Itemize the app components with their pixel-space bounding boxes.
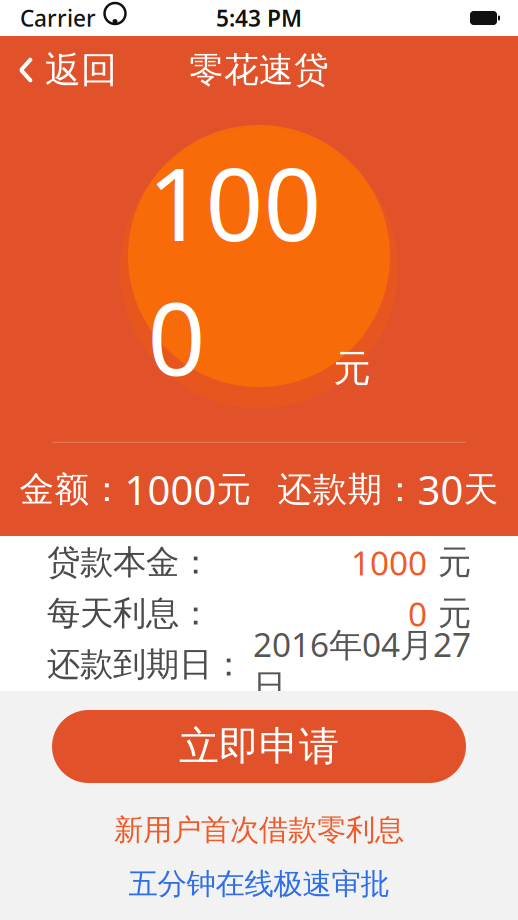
staticText: 贷款本金： [47, 542, 212, 583]
staticText: 5:43 PM [216, 3, 302, 33]
staticText: 立即申请 [179, 722, 339, 771]
staticText: 30 [417, 463, 463, 516]
button[interactable]: 五分钟在线极速审批 [108, 863, 409, 905]
staticText: 1000 [351, 540, 427, 585]
staticText: 元 [438, 542, 471, 583]
staticText: 2016年04月27日 [253, 622, 471, 707]
staticText: 新用户首次借款零利息 [114, 812, 404, 848]
staticText: 金额： [19, 468, 124, 511]
staticText: 天 [463, 468, 498, 511]
staticText: 零花速贷 [189, 49, 329, 91]
staticText: Carrier [20, 3, 96, 33]
staticText: 每天利息： [47, 593, 212, 634]
staticText: 元 [216, 468, 251, 511]
staticText: 0 [408, 591, 427, 636]
staticText: 1000 [124, 463, 216, 516]
staticText: 元 [333, 346, 370, 392]
button[interactable]: 返回 [0, 37, 133, 103]
staticText: 五分钟在线极速审批 [128, 866, 389, 902]
staticText: 1000 [147, 134, 321, 403]
staticText: 元 [438, 593, 471, 634]
button[interactable]: 新用户首次借款零利息 [94, 809, 424, 851]
button[interactable]: 立即申请 [52, 710, 466, 783]
staticText: 还款到期日： [47, 644, 245, 685]
staticText: 返回 [45, 48, 117, 92]
staticText: 还款期： [277, 468, 417, 511]
